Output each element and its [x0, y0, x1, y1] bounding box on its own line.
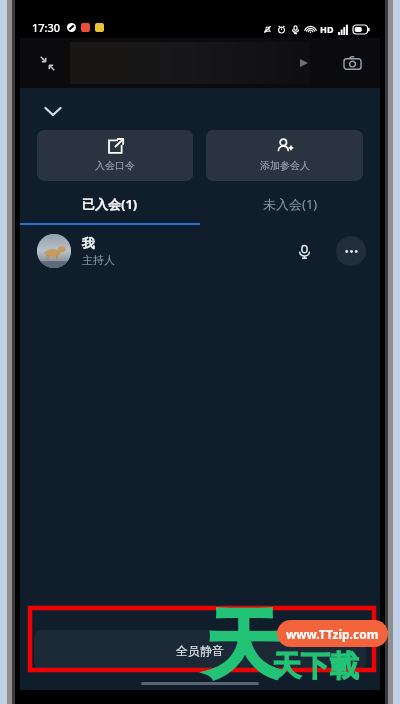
- staticText: 主持人: [82, 253, 115, 267]
- staticText: 17:30: [32, 20, 61, 35]
- staticText: 未入会(1): [263, 195, 318, 213]
- staticText: 我: [82, 235, 95, 251]
- button[interactable]: 添加参会人: [206, 130, 363, 181]
- button[interactable]: 已入会(1): [20, 191, 200, 217]
- staticText: 已入会(1): [82, 195, 138, 213]
- button[interactable]: Minimize: [34, 50, 60, 76]
- staticText: 入会口令: [95, 159, 135, 172]
- staticText: www.TTzip.com: [286, 626, 379, 642]
- button[interactable]: More options: [336, 236, 366, 266]
- button[interactable]: 全员静音: [34, 630, 366, 670]
- button[interactable]: 入会口令: [37, 130, 193, 181]
- staticText: HD: [320, 23, 334, 35]
- button[interactable]: 我: [37, 225, 366, 277]
- button[interactable]: Microphone: [290, 237, 318, 265]
- button[interactable]: 未入会(1): [200, 191, 380, 217]
- staticText: 天下載: [272, 648, 359, 685]
- staticText: 天: [205, 598, 281, 694]
- staticText: 添加参会人: [260, 159, 310, 172]
- staticText: 全员静音: [176, 643, 224, 658]
- button[interactable]: Collapse: [38, 96, 68, 126]
- button[interactable]: Camera: [338, 49, 366, 77]
